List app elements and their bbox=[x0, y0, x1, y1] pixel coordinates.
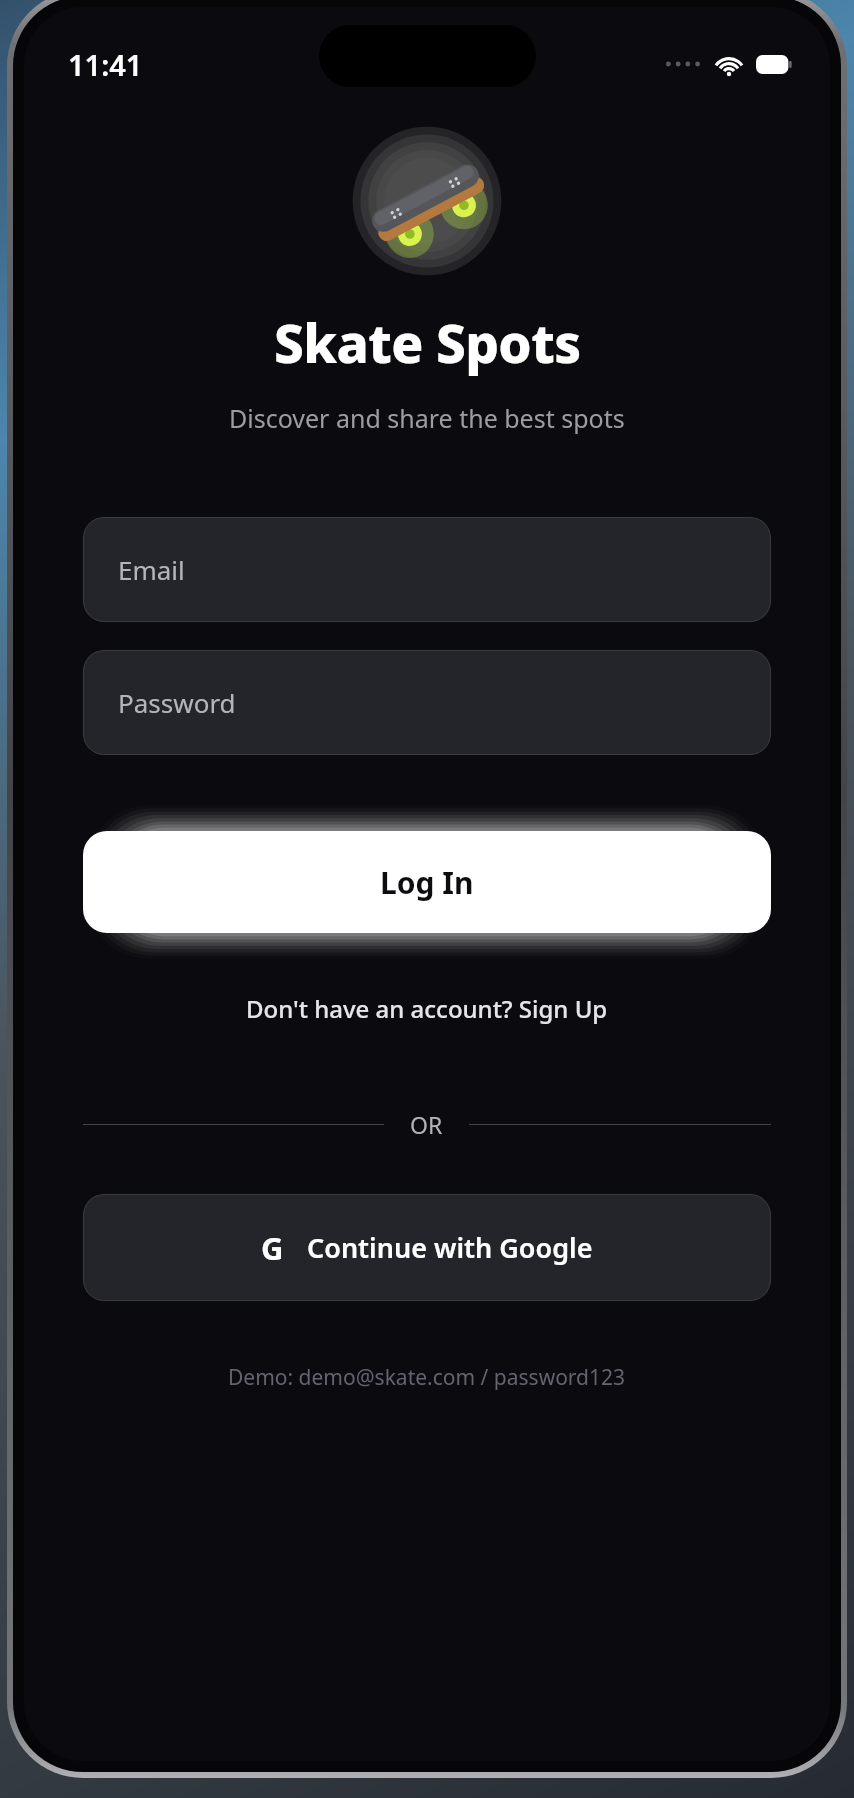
button[interactable]: Email bbox=[83, 517, 771, 622]
staticText: Skate Spots bbox=[274, 306, 581, 378]
staticText: OR bbox=[410, 1109, 443, 1140]
staticText: Demo: demo@skate.com / password123 bbox=[228, 1363, 626, 1392]
staticText: Email bbox=[118, 552, 185, 587]
button[interactable]: Log In bbox=[83, 831, 771, 933]
button[interactable]: Don't have an account? Sign Up bbox=[236, 985, 618, 1032]
button[interactable]: G bbox=[83, 1194, 771, 1301]
staticText: Log In bbox=[380, 862, 474, 903]
staticText: G bbox=[261, 1227, 284, 1269]
staticText: 11:41 bbox=[68, 45, 143, 84]
staticText: Discover and share the best spots bbox=[229, 401, 625, 435]
staticText: Don't have an account? Sign Up bbox=[246, 992, 608, 1025]
staticText: Password bbox=[118, 685, 236, 720]
button[interactable]: Password bbox=[83, 650, 771, 755]
staticText: Continue with Google bbox=[307, 1229, 593, 1266]
